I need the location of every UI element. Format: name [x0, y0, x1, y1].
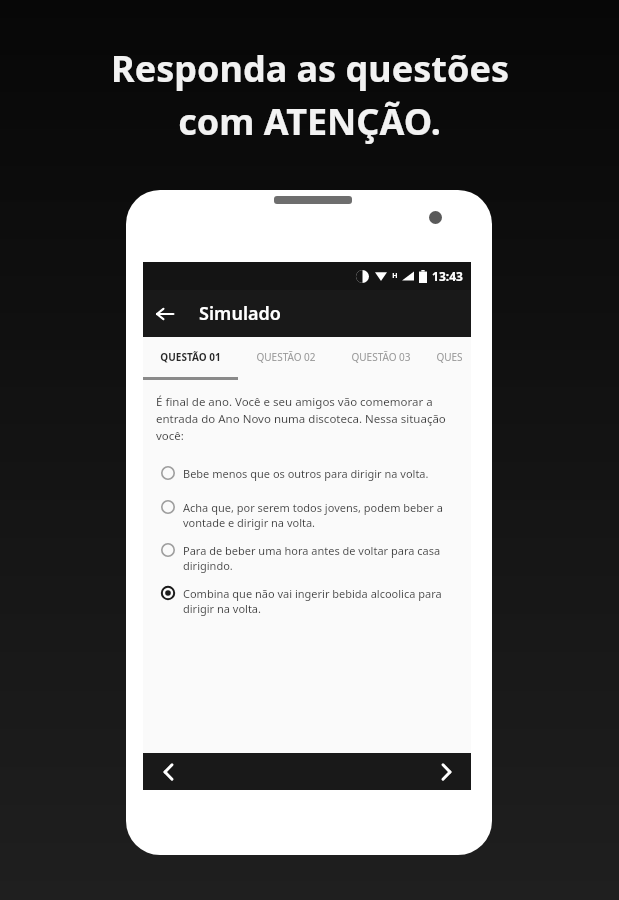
staticText: Responda as questões [111, 44, 509, 93]
button[interactable]: Bebe menos que os outros para dirigir na… [156, 466, 458, 483]
staticText: QUESTÃO 03 [351, 350, 411, 364]
staticText: Acha que, por serem todos jovens, podem … [183, 500, 458, 530]
button[interactable]: Previous question [143, 753, 193, 790]
staticText: H [392, 271, 398, 281]
button[interactable]: Next question [421, 753, 471, 790]
staticText: 13:43 [432, 268, 463, 284]
staticText: com ATENÇÃO. [178, 97, 441, 146]
staticText: Bebe menos que os outros para dirigir na… [183, 466, 458, 481]
button[interactable]: Combina que não vai ingerir bebida alcoo… [156, 586, 458, 616]
staticText: QUESTÃO 02 [256, 350, 316, 364]
button[interactable]: QUESTÃO 01 [143, 337, 238, 377]
button[interactable]: QUESTÃO 03 [333, 337, 428, 377]
staticText: Simulado [199, 301, 281, 326]
staticText: QUESTÃO 01 [160, 350, 221, 364]
staticText: Para de beber uma hora antes de voltar p… [183, 543, 458, 573]
staticText: QUES [436, 350, 463, 364]
button[interactable]: QUES [428, 337, 471, 377]
button[interactable]: Para de beber uma hora antes de voltar p… [156, 543, 458, 573]
button[interactable]: Back [143, 292, 187, 336]
staticText: É final de ano. Você e seu amigos vão co… [156, 394, 458, 444]
staticText: Combina que não vai ingerir bebida alcoo… [183, 586, 458, 616]
button[interactable]: Acha que, por serem todos jovens, podem … [156, 500, 458, 530]
button[interactable]: QUESTÃO 02 [238, 337, 333, 377]
